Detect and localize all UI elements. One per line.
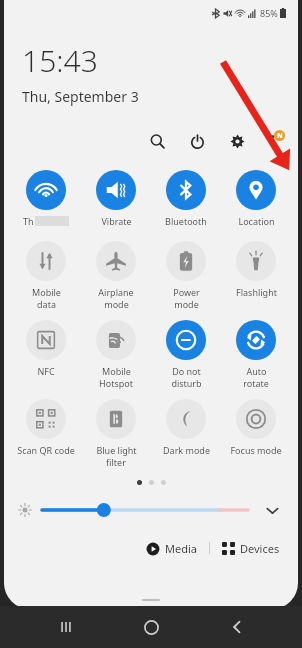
staticText: NFC [37, 365, 55, 377]
staticText: Mobile [32, 286, 61, 298]
button[interactable]: Focus mode [222, 397, 290, 458]
staticText: 15:43 [22, 40, 98, 81]
staticText: Dark mode [163, 444, 210, 456]
staticText: Focus mode [230, 444, 282, 456]
staticText: mode [174, 298, 199, 310]
staticText: data [37, 298, 56, 310]
staticText: N [277, 131, 283, 141]
button[interactable]: Back [217, 607, 257, 647]
button[interactable]: Power [182, 126, 212, 156]
staticText: disturb [171, 377, 202, 389]
button[interactable]: Media [142, 539, 201, 558]
button[interactable]: Search [142, 126, 172, 156]
button[interactable]: Power [152, 239, 220, 312]
button[interactable]: Dark mode [152, 397, 220, 458]
button[interactable]: Home [131, 607, 171, 647]
staticText: 85% [260, 7, 278, 19]
button[interactable]: Recents [46, 607, 86, 647]
button[interactable]: Blue light [82, 397, 150, 470]
staticText: Airplane [98, 286, 134, 298]
button[interactable]: Brightness [42, 500, 248, 520]
staticText: Thu, September 3 [22, 87, 139, 106]
staticText: Location [238, 215, 275, 227]
button[interactable]: NFC [12, 318, 80, 379]
button[interactable]: Scan QR code [12, 397, 80, 458]
staticText: mode [104, 298, 129, 310]
staticText: Hotspot [99, 377, 133, 389]
button[interactable]: Th [12, 168, 80, 229]
staticText: Flashlight [236, 286, 277, 298]
staticText: Scan QR code [17, 444, 75, 456]
button[interactable]: Expand [260, 498, 284, 522]
staticText: Th [23, 215, 34, 227]
button[interactable]: Mobile [82, 318, 150, 391]
button[interactable]: Airplane [82, 239, 150, 312]
staticText: Devices [240, 541, 280, 556]
staticText: Auto [246, 365, 267, 377]
staticText: Bluetooth [165, 215, 207, 227]
staticText: Vibrate [101, 215, 132, 227]
button[interactable]: Vibrate [82, 168, 150, 229]
button[interactable]: Settings [222, 126, 252, 156]
staticText: Power [173, 286, 200, 298]
button[interactable]: Do not [152, 318, 220, 391]
button[interactable]: Mobile [12, 239, 80, 312]
button[interactable]: Flashlight [222, 239, 290, 300]
staticText: Mobile [102, 365, 131, 377]
button[interactable]: Location [222, 168, 290, 229]
button[interactable]: Auto [222, 318, 290, 391]
staticText: Do not [172, 365, 201, 377]
button[interactable]: Bluetooth [152, 168, 220, 229]
button[interactable]: More options [258, 126, 288, 156]
staticText: rotate [243, 377, 269, 389]
staticText: filter [106, 456, 126, 468]
staticText: Blue light [96, 444, 137, 456]
staticText: Media [165, 541, 197, 556]
button[interactable]: Devices [218, 539, 284, 558]
